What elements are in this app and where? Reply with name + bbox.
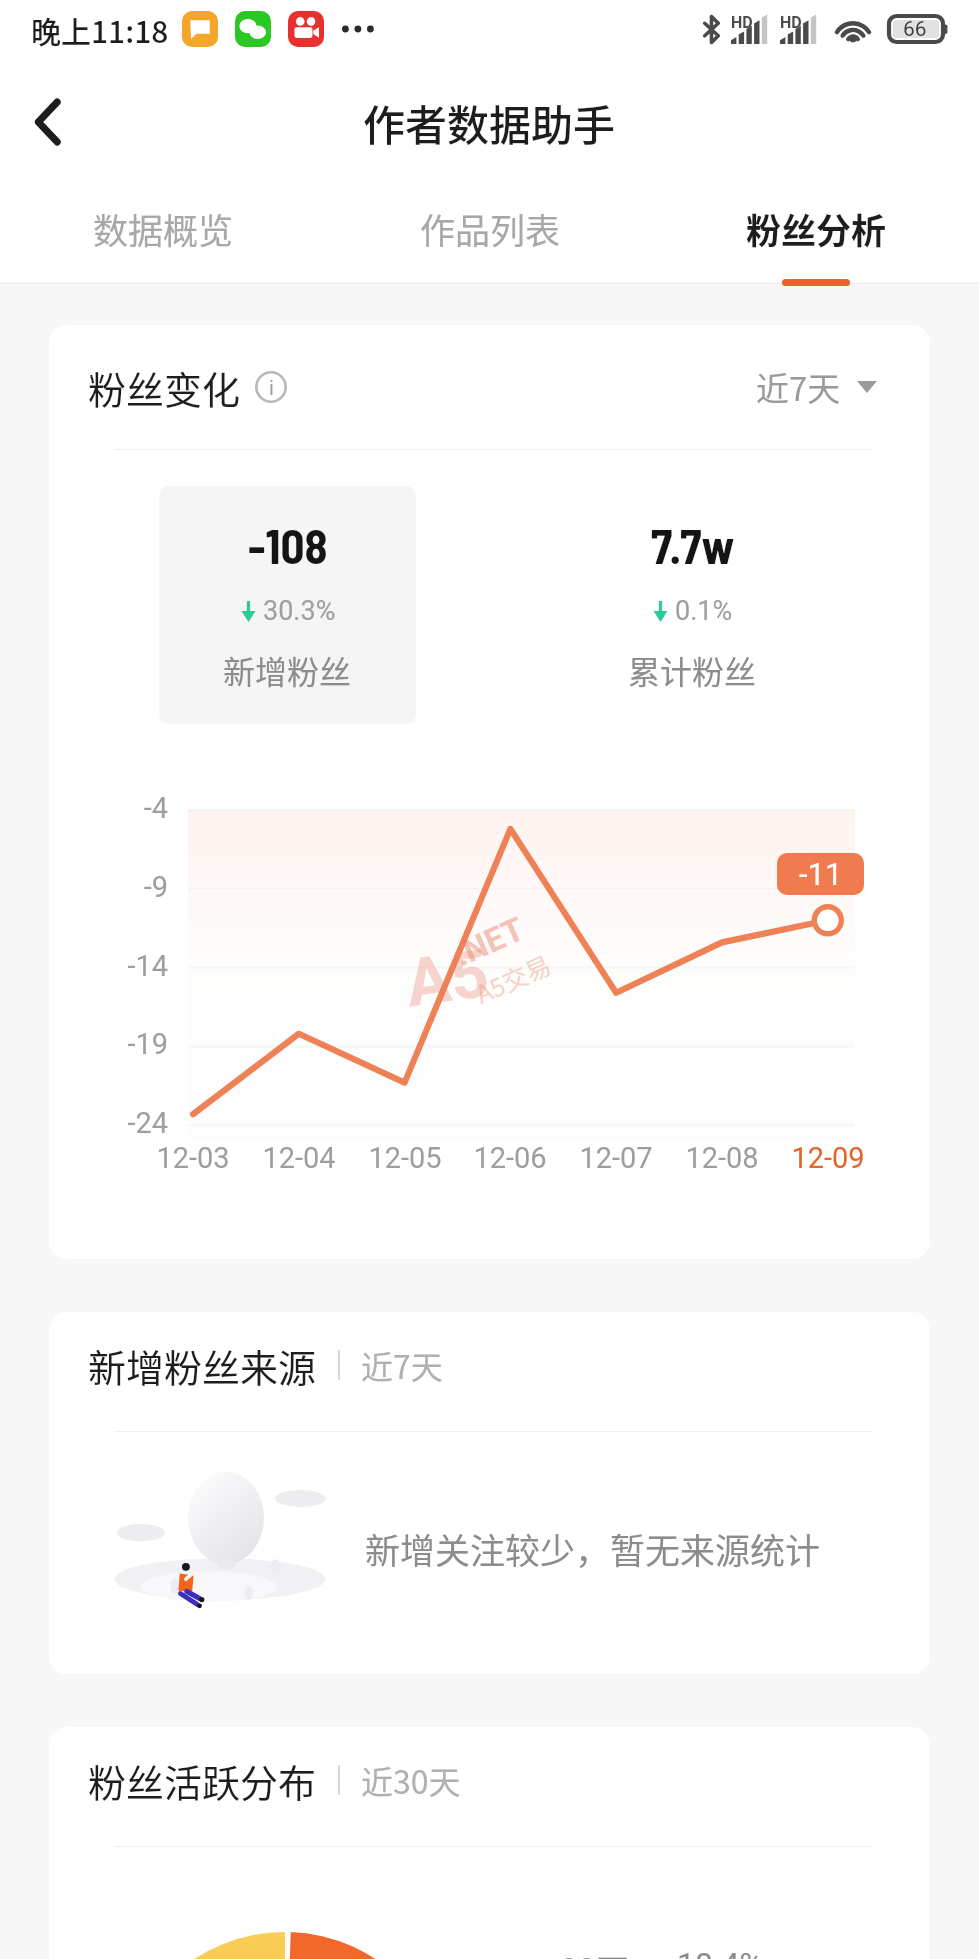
staticText: 12-09 <box>778 1141 878 1175</box>
staticText: 粉丝变化 <box>88 360 241 415</box>
button[interactable]: 粉丝分析 <box>653 186 979 284</box>
staticText: 18.4% <box>677 1945 763 1959</box>
staticText: 12-05 <box>355 1141 455 1175</box>
staticText: 7.7w <box>651 517 735 573</box>
staticText: 作品列表 <box>420 203 561 254</box>
staticText: 近30天 <box>361 1757 461 1803</box>
staticText: 粉丝活跃分布 <box>88 1753 317 1808</box>
staticText: 12-08 <box>672 1141 772 1175</box>
staticText: -9 <box>94 870 168 904</box>
button[interactable]: 7.7w <box>564 486 821 724</box>
staticText: 22万 <box>561 1945 629 1959</box>
staticText: 作者数据助手 <box>363 92 616 153</box>
staticText: 累计粉丝 <box>628 647 757 693</box>
staticText: 粉丝分析 <box>746 203 887 254</box>
button[interactable]: -108 <box>159 486 416 724</box>
staticText: 新增粉丝 <box>223 647 352 693</box>
staticText: 30.3% <box>263 595 336 627</box>
staticText: 晚上11:18 <box>31 8 169 51</box>
staticText: 近7天 <box>756 363 841 411</box>
staticText: 12-06 <box>460 1141 560 1175</box>
staticText: 数据概览 <box>93 203 234 254</box>
staticText: -14 <box>94 949 168 983</box>
staticText: -24 <box>94 1106 168 1140</box>
staticText: 近7天 <box>361 1342 443 1388</box>
staticText: 66 <box>903 17 927 42</box>
staticText: HD <box>731 13 753 32</box>
staticText: A5 <box>401 935 494 1022</box>
staticText: A5交易 <box>469 945 557 1011</box>
button[interactable]: Info <box>255 371 287 403</box>
staticText: 0.1% <box>675 595 733 627</box>
staticText: 12-03 <box>143 1141 243 1175</box>
staticText: i <box>269 376 274 399</box>
staticText: 新增粉丝来源 <box>88 1338 317 1393</box>
staticText: 新增关注较少，暂无来源统计 <box>365 1523 821 1574</box>
staticText: -108 <box>248 517 328 573</box>
button[interactable]: 近7天 <box>756 363 877 411</box>
button[interactable]: 数据概览 <box>0 186 327 284</box>
button[interactable]: 作品列表 <box>327 186 653 284</box>
staticText: 12-04 <box>249 1141 349 1175</box>
staticText: -19 <box>94 1027 168 1061</box>
staticText: -4 <box>94 791 168 825</box>
staticText: -11 <box>799 856 843 892</box>
staticText: .NET <box>448 909 531 974</box>
button[interactable]: Back <box>10 58 86 186</box>
staticText: HD <box>780 13 802 32</box>
staticText: 12-07 <box>566 1141 666 1175</box>
